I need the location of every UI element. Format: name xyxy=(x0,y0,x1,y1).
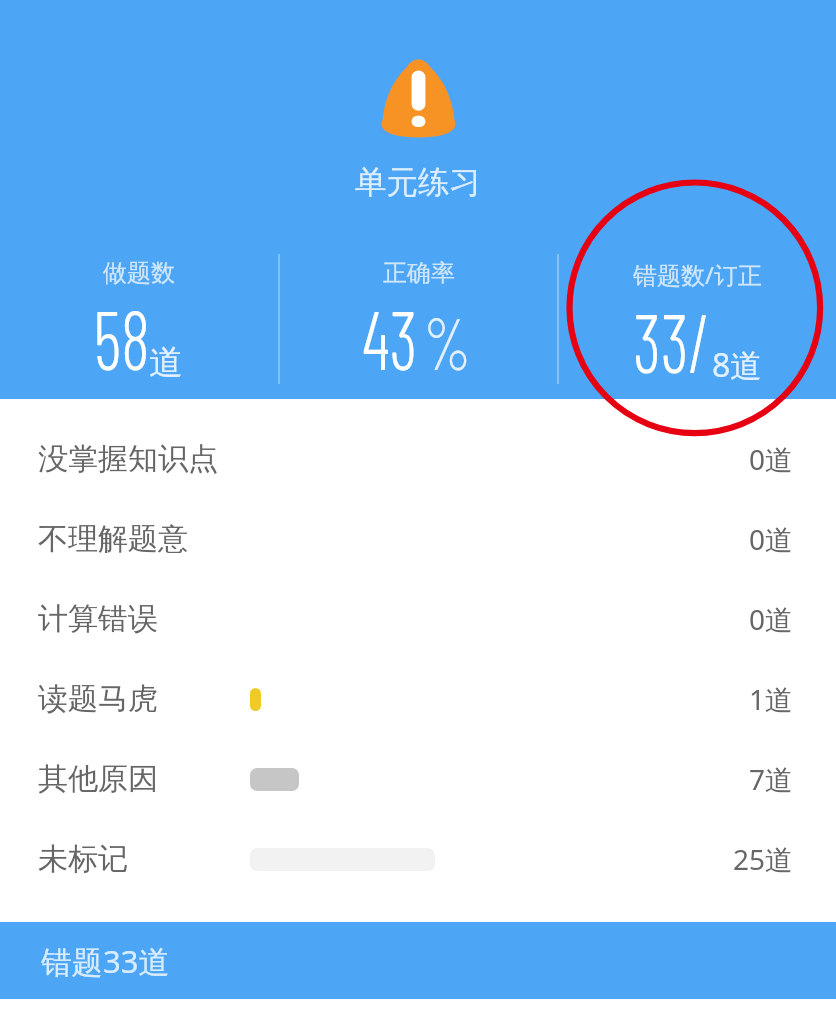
staticText: 做题数 xyxy=(103,258,175,288)
other: Warning xyxy=(380,60,457,137)
staticText: 33/ xyxy=(633,291,711,389)
staticText: 58 xyxy=(93,288,150,386)
staticText: 道 xyxy=(149,341,183,384)
staticText: 0道 xyxy=(749,520,794,558)
button[interactable]: 错题数/订正 xyxy=(559,258,836,389)
button[interactable]: 其他原因 xyxy=(0,739,836,819)
button[interactable]: 不理解题意 xyxy=(0,499,836,579)
staticText: 未标记 xyxy=(38,840,248,878)
staticText: 8道 xyxy=(712,343,763,387)
staticText: 读题马虎 xyxy=(38,680,248,718)
staticText: 其他原因 xyxy=(38,760,248,798)
button[interactable]: 读题马虎 xyxy=(0,659,836,739)
staticText: % xyxy=(424,298,471,384)
staticText: 0道 xyxy=(749,440,794,478)
staticText: 错题数/订正 xyxy=(633,258,762,291)
staticText: 25道 xyxy=(733,840,794,878)
staticText: 单元练习 xyxy=(355,163,481,203)
staticText: 计算错误 xyxy=(38,600,248,638)
button[interactable]: 未标记 xyxy=(0,819,836,899)
staticText: 43 xyxy=(362,288,418,386)
button[interactable]: 正确率 xyxy=(280,258,557,386)
staticText: 1道 xyxy=(749,680,794,718)
staticText: 错题33道 xyxy=(41,940,170,982)
staticText: 0道 xyxy=(749,600,794,638)
staticText: 不理解题意 xyxy=(38,520,248,558)
button[interactable]: 做题数 xyxy=(0,258,278,386)
button[interactable]: 错题33道 xyxy=(0,922,836,999)
staticText: 没掌握知识点 xyxy=(38,440,248,478)
button[interactable]: 没掌握知识点 xyxy=(0,419,836,499)
button[interactable]: 计算错误 xyxy=(0,579,836,659)
staticText: 正确率 xyxy=(383,258,455,288)
staticText: 7道 xyxy=(749,760,794,798)
